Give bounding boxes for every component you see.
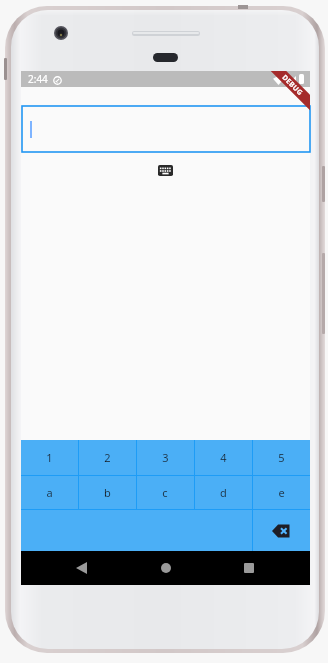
staticText: 3	[162, 450, 169, 465]
staticText: 2	[104, 450, 111, 465]
staticText: 5	[278, 450, 285, 465]
staticText: a	[46, 485, 53, 500]
staticText: d	[220, 485, 227, 500]
button[interactable]	[22, 106, 310, 152]
staticText: c	[162, 485, 168, 500]
button[interactable]: Recent apps	[237, 556, 261, 580]
staticText: 2:44	[28, 72, 48, 86]
other: Show keyboard	[158, 165, 173, 176]
button[interactable]: 1	[21, 440, 78, 475]
button[interactable]: Home	[154, 556, 178, 580]
button[interactable]: b	[78, 476, 136, 509]
button[interactable]: d	[194, 476, 252, 509]
button[interactable]: 5	[252, 440, 310, 475]
staticText: 4	[220, 450, 227, 465]
button[interactable]: Backspace	[252, 510, 310, 551]
button[interactable]: c	[136, 476, 194, 509]
button[interactable]: 3	[136, 440, 194, 475]
staticText: DEBUG	[279, 73, 305, 98]
button[interactable]: 4	[194, 440, 252, 475]
button[interactable]: Back	[69, 556, 93, 580]
staticText: e	[278, 485, 285, 500]
button[interactable]: a	[21, 476, 78, 509]
staticText: b	[104, 485, 111, 500]
button[interactable]: e	[252, 476, 310, 509]
button[interactable]: 2	[78, 440, 136, 475]
staticText: 1	[46, 450, 53, 465]
